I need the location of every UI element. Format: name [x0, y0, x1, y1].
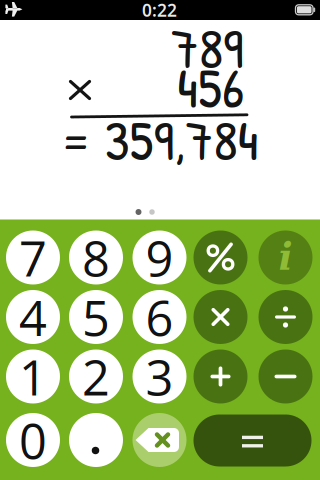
button[interactable]: plus	[193, 349, 247, 403]
staticText: 0:22	[142, 0, 177, 21]
button[interactable]: 3	[132, 349, 186, 403]
button[interactable]: 4	[6, 290, 60, 344]
button[interactable]: 6	[132, 290, 186, 344]
button[interactable]: backspace	[132, 413, 186, 467]
button[interactable]: 2	[69, 349, 123, 403]
staticText: = 359,784	[59, 102, 258, 177]
staticText: 7	[19, 224, 47, 291]
staticText: i	[278, 235, 292, 278]
button[interactable]: equals	[193, 414, 311, 466]
staticText: 2	[82, 343, 110, 410]
staticText: 789	[171, 10, 244, 85]
button[interactable]: multiply	[193, 290, 247, 344]
staticText: 5	[82, 284, 110, 350]
staticText: 3	[145, 343, 173, 410]
button[interactable]: info	[258, 230, 312, 284]
staticText: 4	[19, 284, 47, 350]
button[interactable]: 9	[132, 230, 186, 284]
staticText: 456	[177, 49, 244, 125]
button[interactable]: decimal point	[69, 413, 123, 467]
button[interactable]: 1	[6, 349, 60, 403]
button[interactable]: minus	[258, 349, 312, 403]
button[interactable]: 0	[6, 413, 60, 467]
staticText: 1	[19, 343, 47, 410]
button[interactable]: divide	[258, 290, 312, 344]
button[interactable]: 5	[69, 290, 123, 344]
button[interactable]: 7	[6, 230, 60, 284]
staticText: 6	[145, 284, 173, 350]
staticText: 9	[145, 224, 173, 291]
staticText: 0	[19, 407, 47, 473]
button[interactable]: percent	[193, 230, 247, 284]
button[interactable]: 8	[69, 230, 123, 284]
staticText: 8	[82, 224, 110, 291]
